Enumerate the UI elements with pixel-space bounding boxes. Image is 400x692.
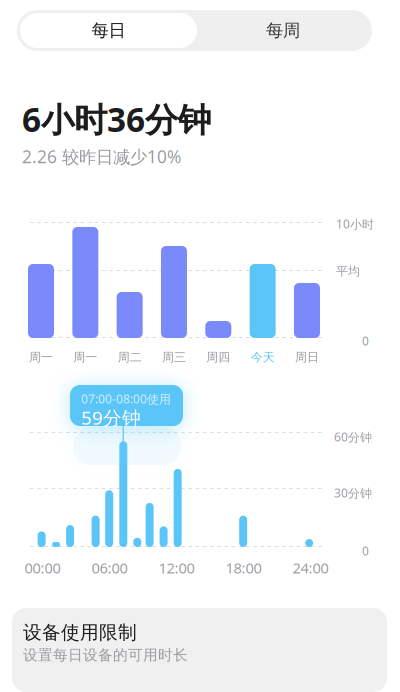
staticText: 24:00 — [292, 558, 328, 577]
staticText: 2.26 较昨日减少10% — [22, 145, 181, 168]
staticText: 周一 — [73, 350, 97, 365]
staticText: 12:00 — [158, 558, 194, 577]
staticText: 18:00 — [225, 558, 261, 577]
staticText: 00:00 — [24, 558, 60, 577]
staticText: 周三 — [162, 350, 186, 365]
staticText: 60分钟 — [334, 429, 372, 445]
staticText: 0 — [362, 333, 369, 349]
staticText: 平均 — [336, 264, 360, 279]
staticText: 10小时 — [336, 216, 374, 232]
staticText: 30分钟 — [334, 485, 372, 501]
staticText: 06:00 — [91, 558, 127, 577]
staticText: 每周 — [266, 20, 300, 41]
staticText: 6小时36分钟 — [22, 97, 211, 141]
staticText: 59分钟 — [81, 405, 141, 430]
staticText: 周二 — [118, 350, 142, 365]
button[interactable]: 每周 — [197, 13, 369, 48]
staticText: 07:00-08:00使用 — [81, 391, 171, 407]
button[interactable]: 每日 — [20, 13, 197, 48]
button[interactable]: 设备使用限制 — [12, 608, 387, 692]
staticText: 周日 — [295, 350, 319, 365]
staticText: 0 — [362, 543, 369, 559]
staticText: 每日 — [91, 20, 125, 41]
staticText: 今天 — [251, 350, 275, 365]
staticText: 周四 — [206, 350, 230, 365]
staticText: 周一 — [29, 350, 53, 365]
staticText: 设置每日设备的可用时长 — [23, 646, 188, 664]
staticText: 设备使用限制 — [23, 621, 137, 644]
